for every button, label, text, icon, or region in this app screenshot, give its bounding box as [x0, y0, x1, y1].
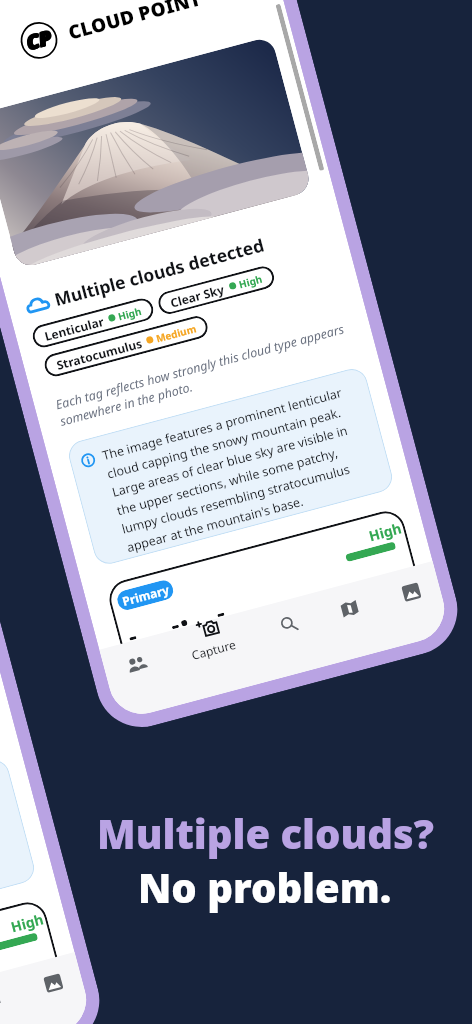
- button[interactable]: Community: [109, 638, 163, 692]
- button[interactable]: Clear Sky: [156, 264, 277, 317]
- staticText: CP: [24, 24, 56, 56]
- staticText: High: [9, 909, 45, 936]
- button[interactable]: Stratocumulus: [42, 313, 210, 379]
- staticText: No problem.: [138, 860, 392, 914]
- button[interactable]: Gallery: [26, 956, 80, 1010]
- button[interactable]: Search: [262, 597, 316, 651]
- staticText: High: [237, 272, 264, 291]
- button[interactable]: Primary: [115, 578, 175, 612]
- button[interactable]: Guide: [0, 972, 18, 1024]
- staticText: CP: [22, 24, 55, 57]
- staticText: High: [367, 518, 403, 545]
- button[interactable]: Capture: [164, 607, 260, 683]
- button[interactable]: Lenticular: [30, 296, 156, 350]
- staticText: High: [116, 304, 143, 323]
- button[interactable]: Gallery: [384, 565, 438, 619]
- staticText: Clear Sky: [168, 281, 227, 311]
- staticText: The image features a prominent lenticula…: [100, 380, 383, 556]
- staticText: CLOUD POINT: [65, 0, 204, 46]
- staticText: Lenticular: [43, 313, 106, 344]
- staticText: CP: [24, 23, 56, 55]
- staticText: Multiple clouds detected: [52, 232, 266, 311]
- staticText: CP: [22, 23, 54, 56]
- staticText: CP: [22, 24, 55, 57]
- staticText: CP: [23, 23, 55, 56]
- button[interactable]: Guide: [322, 581, 376, 635]
- staticText: Primary: [120, 581, 171, 609]
- staticText: Stratocumulus: [55, 335, 144, 373]
- staticText: Each tag reflects how strongly this clou…: [54, 319, 356, 430]
- staticText: The image features a prominent lenticula…: [0, 771, 25, 947]
- staticText: CP: [23, 24, 56, 57]
- staticText: CP: [23, 24, 56, 57]
- staticText: CP: [24, 24, 56, 56]
- staticText: Medium: [154, 321, 198, 345]
- staticText: Capture: [190, 636, 237, 663]
- staticText: Multiple clouds?: [97, 806, 434, 860]
- button[interactable]: Back: [0, 123, 5, 176]
